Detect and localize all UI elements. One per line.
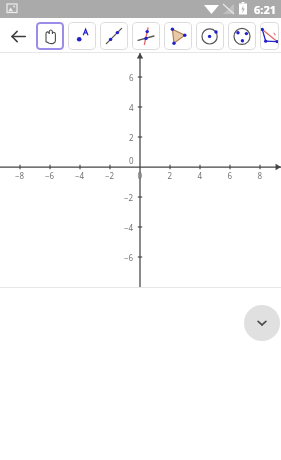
button[interactable]: Expand algebra view	[244, 305, 280, 341]
button[interactable]: Line tool	[100, 22, 128, 50]
staticText: 6:21	[254, 2, 276, 17]
button[interactable]: Perpendicular line tool	[132, 22, 160, 50]
button[interactable]: Move tool	[36, 22, 64, 50]
button[interactable]: Point tool	[68, 22, 96, 50]
button[interactable]: Angle tool	[260, 22, 279, 50]
button[interactable]: Polygon tool	[164, 22, 192, 50]
button[interactable]: Circle tool	[196, 22, 224, 50]
button[interactable]: Circle through points tool	[228, 22, 256, 50]
button[interactable]: Back	[4, 22, 32, 50]
